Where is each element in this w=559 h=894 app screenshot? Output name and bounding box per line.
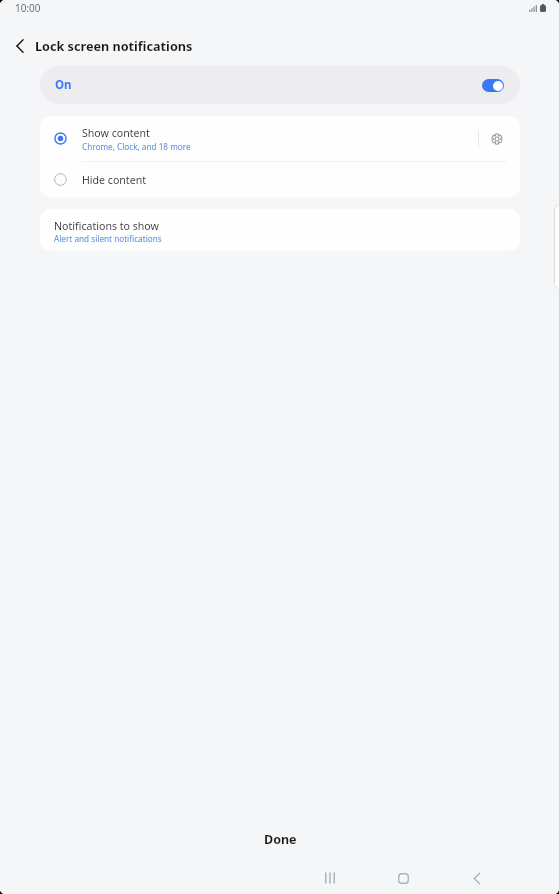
staticText: Alert and silent notifications <box>54 233 162 244</box>
staticText: 10:00 <box>15 1 41 15</box>
button[interactable]: Notifications to show <box>40 209 520 251</box>
button[interactable]: Navigate up <box>7 33 33 59</box>
staticText: Lock screen notifications <box>35 37 193 54</box>
staticText: Show content <box>82 126 150 140</box>
staticText: Chrome, Clock, and 18 more <box>82 141 191 152</box>
button[interactable]: Show content <box>40 116 478 161</box>
button[interactable]: On <box>40 66 520 104</box>
button[interactable]: Back <box>457 860 497 894</box>
staticText: On <box>55 77 72 93</box>
button[interactable]: Hide content <box>40 162 520 197</box>
staticText: Notifications to show <box>54 219 159 233</box>
button[interactable]: Home <box>383 860 423 894</box>
staticText: Hide content <box>82 173 147 187</box>
button[interactable]: Notification settings <box>479 116 520 161</box>
button[interactable]: Recent apps <box>310 860 350 894</box>
button[interactable]: Done <box>1 823 559 855</box>
staticText: Done <box>264 831 297 848</box>
